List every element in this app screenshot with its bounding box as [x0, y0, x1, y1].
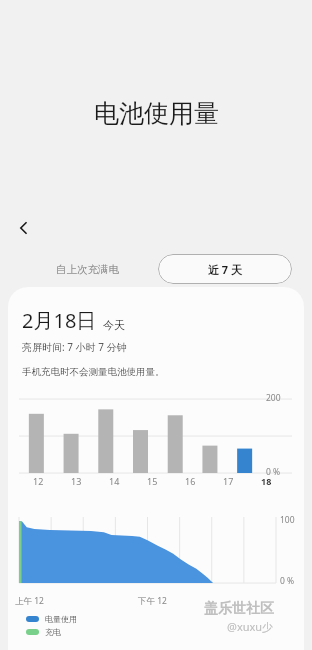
staticText: 自上次充满电: [56, 263, 119, 276]
staticText: 2月18日: [22, 307, 97, 334]
staticText: 亮屏时间: 7 小时 7 分钟: [22, 340, 127, 354]
staticText: @xuxu少: [227, 619, 274, 634]
staticText: 18: [261, 475, 272, 487]
staticText: 14: [109, 475, 120, 487]
button[interactable]: 自上次充满电: [20, 254, 154, 284]
staticText: 盖乐世社区: [204, 600, 274, 618]
staticText: 充电: [45, 627, 61, 637]
staticText: 下午 12: [138, 595, 167, 607]
staticText: 今天: [103, 318, 125, 332]
staticText: 12: [33, 475, 44, 487]
staticText: 13: [71, 475, 82, 487]
staticText: 手机充电时不会测量电池使用量。: [22, 366, 165, 378]
staticText: 上午 12: [15, 595, 44, 607]
staticText: 0 %: [280, 575, 295, 587]
staticText: 100: [280, 514, 295, 526]
button[interactable]: 近 7 天: [158, 254, 292, 284]
staticText: 0 %: [266, 466, 281, 478]
staticText: 近 7 天: [208, 262, 243, 277]
staticText: 电量使用: [45, 614, 77, 624]
button[interactable]: Back: [8, 212, 40, 244]
staticText: 16: [185, 475, 196, 487]
staticText: 15: [147, 475, 158, 487]
staticText: 200: [266, 392, 281, 404]
staticText: 电池使用量: [94, 98, 219, 129]
staticText: 17: [223, 475, 234, 487]
